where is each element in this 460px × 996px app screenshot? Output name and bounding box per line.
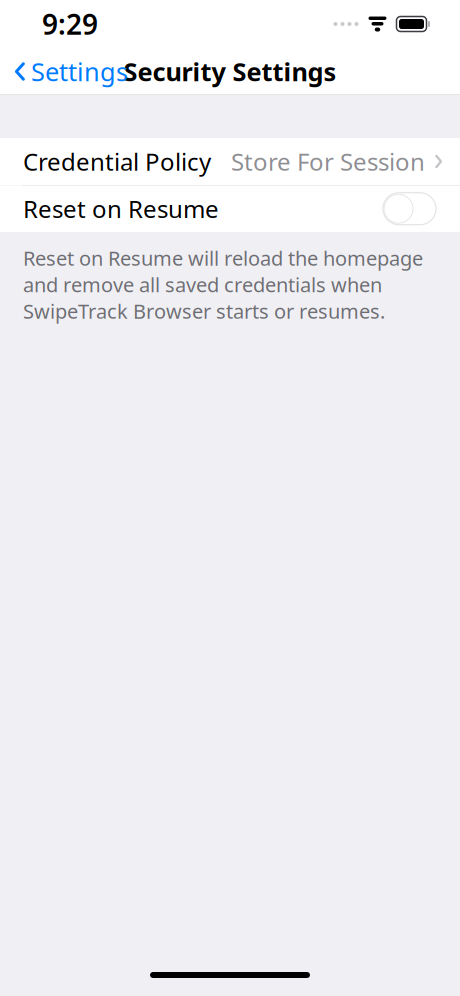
staticText: Store For Session	[231, 146, 425, 177]
button[interactable]: Settings	[0, 48, 138, 95]
staticText: Reset on Resume	[23, 193, 219, 225]
staticText: 9:29	[42, 5, 98, 43]
staticText: Credential Policy	[23, 146, 211, 177]
button[interactable]: Reset on Resume	[383, 193, 436, 225]
button[interactable]: Credential Policy	[0, 138, 460, 185]
staticText: Security Settings	[123, 55, 336, 88]
staticText: Settings	[31, 55, 128, 88]
staticText: Reset on Resume will reload the homepage…	[23, 245, 423, 324]
